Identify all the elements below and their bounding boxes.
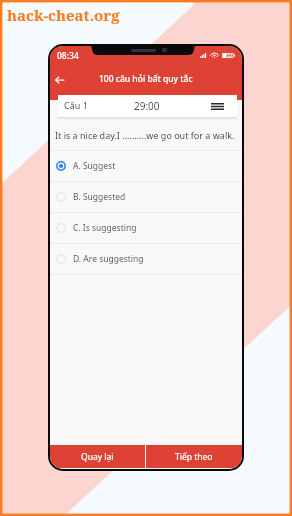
button[interactable]: D. Are suggesting	[50, 244, 242, 274]
button[interactable]: Quay lại	[50, 445, 145, 468]
staticText: A. Suggest	[73, 160, 116, 172]
button[interactable]: A. Suggest	[50, 151, 242, 181]
staticText: D. Are suggesting	[73, 253, 144, 265]
staticText: C. Is suggesting	[73, 222, 137, 234]
staticText: B. Suggested	[73, 191, 126, 203]
button[interactable]: Back	[50, 70, 70, 90]
staticText: 08:34	[57, 50, 79, 62]
staticText: Tiếp theo	[175, 451, 213, 463]
button[interactable]: B. Suggested	[50, 182, 242, 212]
button[interactable]: Menu	[209, 98, 225, 114]
staticText: 100 câu hỏi bất quy tắc	[99, 73, 193, 85]
staticText: Quay lại	[81, 451, 114, 463]
staticText: hack-cheat.org	[7, 5, 120, 25]
button[interactable]: Tiếp theo	[146, 445, 242, 468]
staticText: Câu 1	[64, 99, 88, 111]
staticText: 29:00	[134, 99, 160, 113]
button[interactable]: C. Is suggesting	[50, 213, 242, 243]
staticText: It is a nice day.I ..........we go out f…	[55, 129, 235, 141]
